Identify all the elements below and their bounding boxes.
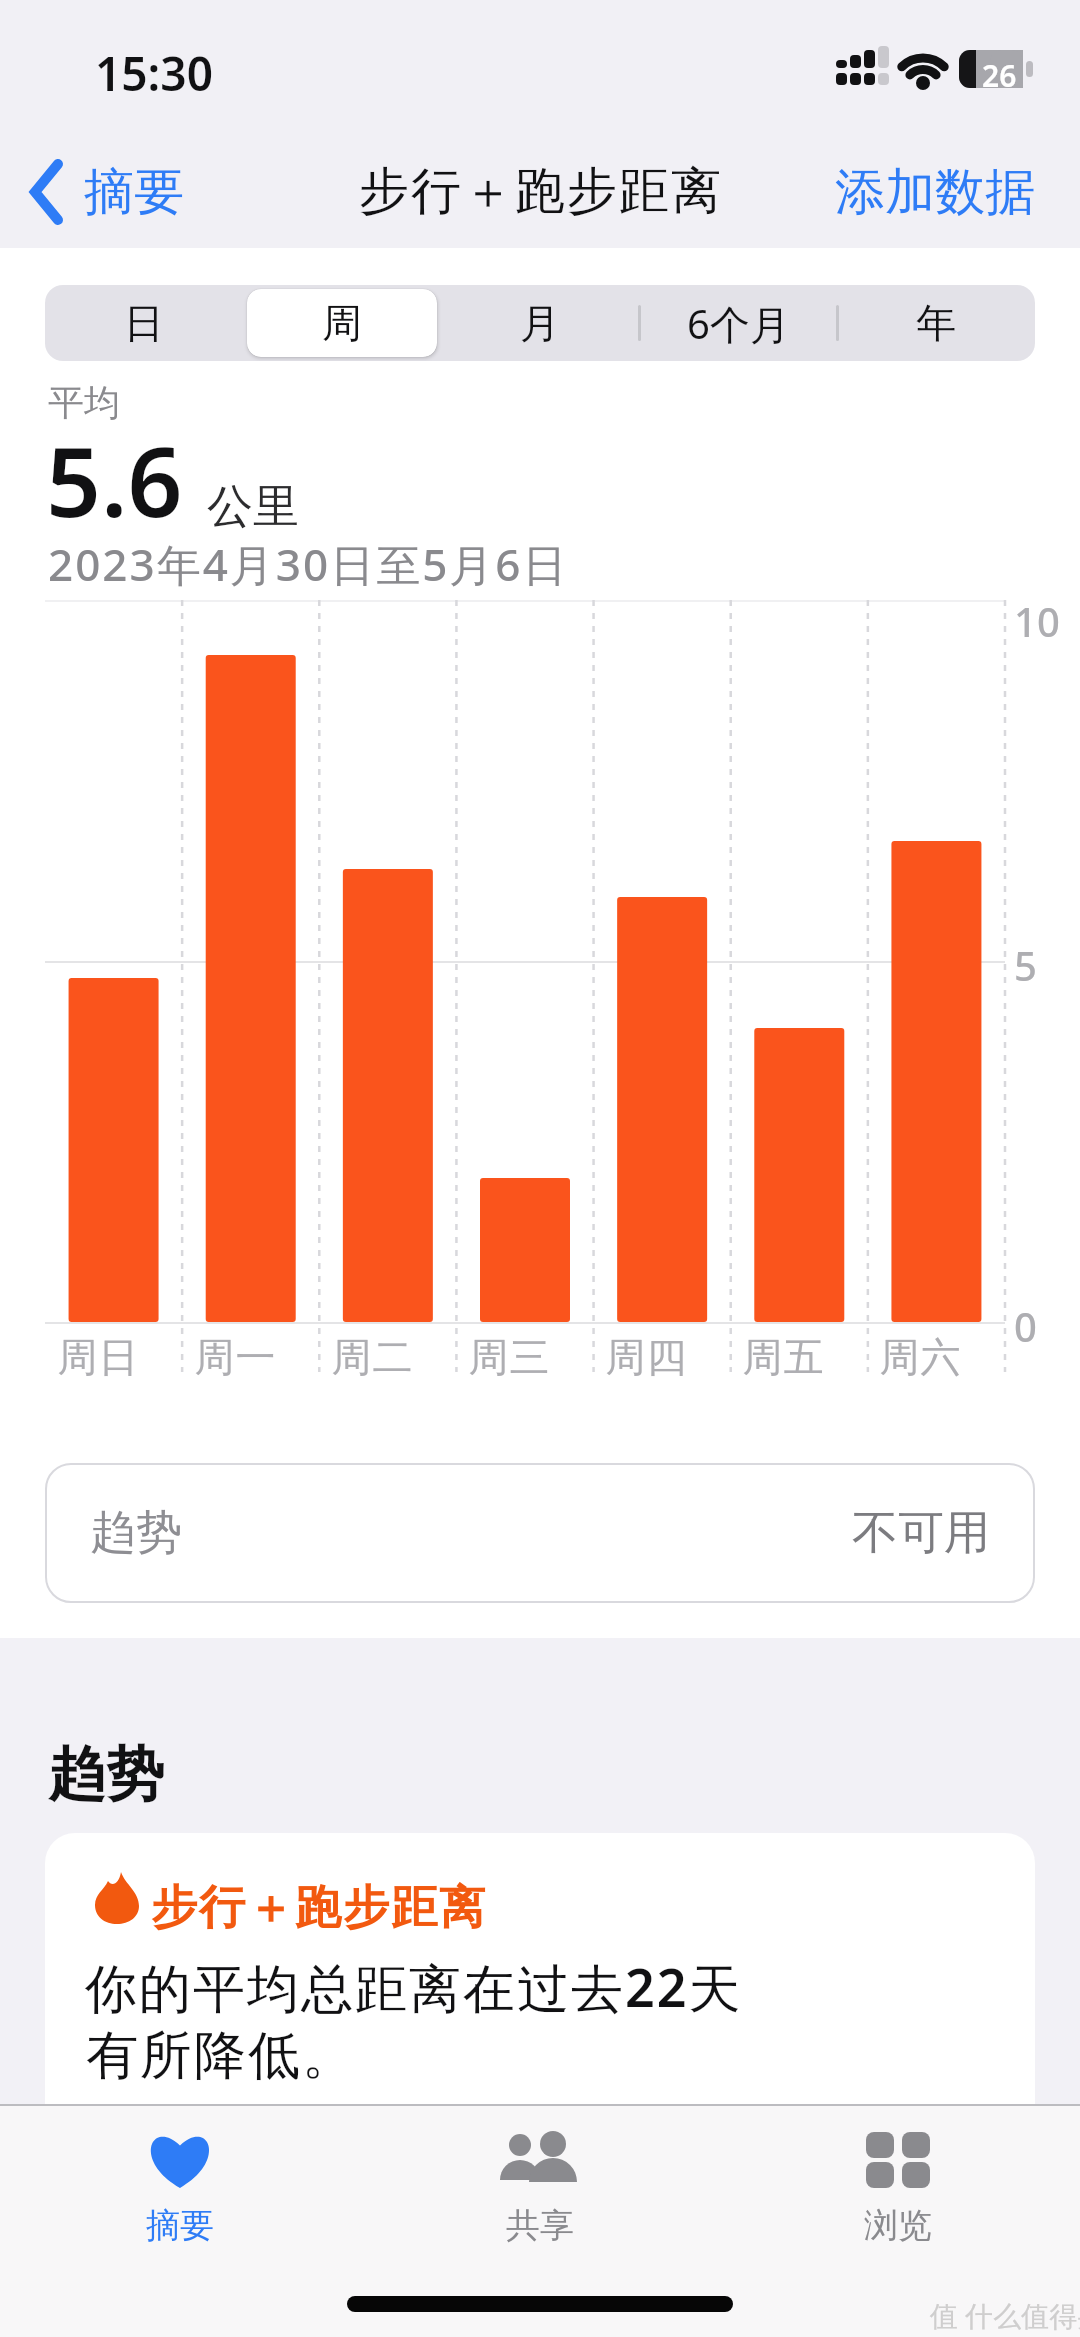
button[interactable]: 添加数据 xyxy=(835,150,1035,235)
staticText: 摘要 xyxy=(84,161,184,224)
button[interactable]: 摘要 xyxy=(105,2114,255,2264)
staticText: 周五 xyxy=(742,1332,824,1382)
staticText: 10 xyxy=(1014,594,1060,648)
button[interactable]: 年 xyxy=(841,289,1031,357)
button[interactable]: 6个月 xyxy=(643,289,833,357)
staticText: 周六 xyxy=(879,1332,961,1382)
staticText: 2023年4月30日至5月6日 xyxy=(48,534,569,594)
staticText: 值 什么值得买 xyxy=(930,2296,1080,2334)
staticText: 0 xyxy=(1014,1299,1037,1353)
staticText: 5 xyxy=(1014,938,1037,992)
staticText: 有所降低。 xyxy=(85,2023,355,2089)
button[interactable]: 步行＋跑步距离 xyxy=(45,1833,1035,2104)
staticText: 周 xyxy=(322,298,362,348)
staticText: 趋势 xyxy=(90,1504,182,1562)
staticText: 周日 xyxy=(57,1332,139,1382)
button[interactable]: 周 xyxy=(247,289,437,357)
staticText: 平均 xyxy=(48,380,120,425)
staticText: 添加数据 xyxy=(835,161,1035,224)
staticText: 月 xyxy=(520,298,560,348)
button[interactable]: 日 xyxy=(49,289,239,357)
staticText: 26 xyxy=(982,55,1017,96)
staticText: 15:30 xyxy=(95,42,213,105)
staticText: 趋势 xyxy=(48,1738,164,1811)
staticText: 5.6 xyxy=(46,414,183,545)
staticText: 周二 xyxy=(331,1332,413,1382)
staticText: 浏览 xyxy=(864,2204,932,2247)
staticText: 共享 xyxy=(506,2204,574,2247)
staticText: 6个月 xyxy=(687,296,790,351)
staticText: 周一 xyxy=(194,1332,276,1382)
button[interactable]: 摘要 xyxy=(20,150,220,236)
staticText: 公里 xyxy=(207,478,299,536)
button[interactable]: 共享 xyxy=(465,2114,615,2264)
staticText: 你的平均总距离在过去22天 xyxy=(85,1951,743,2022)
staticText: 周四 xyxy=(605,1332,687,1382)
staticText: 不可用 xyxy=(852,1504,990,1562)
button[interactable]: 月 xyxy=(445,289,635,357)
staticText: 年 xyxy=(916,298,956,348)
staticText: 日 xyxy=(124,298,164,348)
button[interactable]: 浏览 xyxy=(823,2114,973,2264)
staticText: 摘要 xyxy=(146,2204,214,2247)
button[interactable]: 趋势 xyxy=(45,1463,1035,1603)
staticText: 步行＋跑步距离 xyxy=(150,1879,486,1937)
staticText: 步行＋跑步距离 xyxy=(358,160,722,223)
staticText: 周三 xyxy=(468,1332,550,1382)
